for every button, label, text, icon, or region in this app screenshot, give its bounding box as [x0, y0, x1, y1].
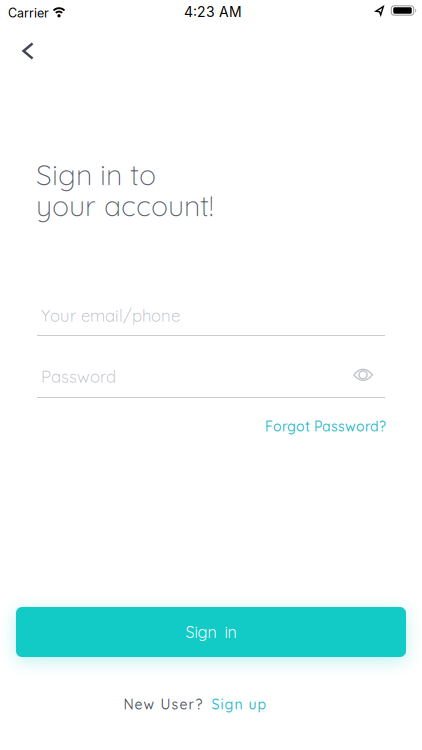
button[interactable]: Sign up	[211, 695, 266, 713]
staticText: 4:23 AM	[184, 3, 242, 20]
button[interactable]: Sign in	[16, 607, 406, 657]
staticText: New User?	[123, 695, 202, 713]
staticText: Sign in to your account!	[36, 157, 214, 223]
button[interactable]: Back	[6, 31, 50, 71]
staticText: Sign in	[185, 622, 236, 642]
staticText: Carrier	[8, 5, 49, 20]
staticText: Password	[41, 366, 116, 387]
staticText: Sign up	[211, 695, 266, 713]
button[interactable]: Show password	[348, 363, 378, 387]
button[interactable]: Forgot Password?	[265, 417, 386, 435]
staticText: Your email/phone	[41, 305, 180, 326]
staticText: Forgot Password?	[265, 417, 386, 435]
